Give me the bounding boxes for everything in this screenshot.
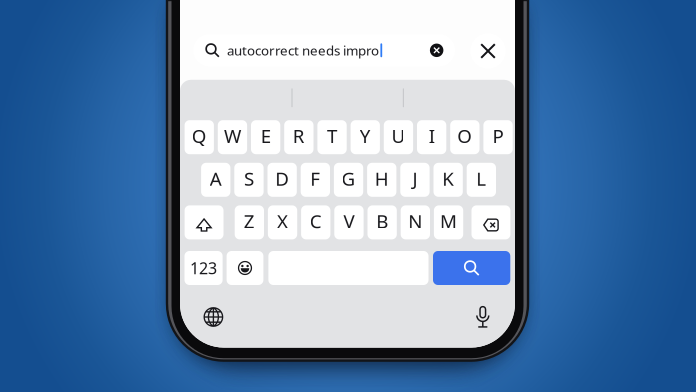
button[interactable]: T <box>317 120 347 154</box>
staticText: P <box>493 123 504 148</box>
staticText: V <box>343 209 354 233</box>
button[interactable]: Y <box>351 120 380 154</box>
button[interactable]: Shift <box>185 205 223 239</box>
button[interactable]: U <box>384 120 413 154</box>
button[interactable]: J <box>400 163 430 197</box>
button[interactable]: W <box>218 120 247 154</box>
button[interactable]: V <box>334 205 364 239</box>
button[interactable]: D <box>267 163 297 197</box>
button[interactable]: X <box>268 205 297 239</box>
staticText: Q <box>192 123 207 148</box>
staticText: A <box>210 166 222 191</box>
button[interactable]: Close <box>470 33 505 68</box>
button[interactable]: P <box>483 120 513 154</box>
button[interactable]: R <box>284 120 313 154</box>
button[interactable]: G <box>334 163 363 197</box>
staticText: F <box>310 166 320 191</box>
staticText: K <box>442 166 454 191</box>
staticText: I <box>429 123 435 148</box>
staticText: J <box>412 166 417 191</box>
staticText: R <box>293 123 305 148</box>
staticText: C <box>310 209 322 233</box>
button[interactable]: N <box>401 205 430 239</box>
button[interactable]: F <box>301 163 330 197</box>
button[interactable]: C <box>301 205 330 239</box>
button[interactable]: O <box>450 120 479 154</box>
button[interactable]: S <box>234 163 264 197</box>
button[interactable]: 123 <box>184 251 223 285</box>
staticText: N <box>408 209 422 233</box>
staticText: T <box>327 123 337 148</box>
staticText: 123 <box>190 257 217 279</box>
button[interactable]: Dictation <box>464 298 502 336</box>
button[interactable]: Emoji <box>227 251 263 285</box>
button[interactable]: autocorrect needs impro <box>193 34 455 66</box>
staticText: autocorrect needs impro <box>227 41 379 59</box>
staticText: S <box>244 166 254 191</box>
button[interactable]: E <box>251 120 280 154</box>
button[interactable]: L <box>467 163 496 197</box>
staticText: O <box>457 123 472 148</box>
button[interactable]: M <box>434 205 463 239</box>
button[interactable]: Q <box>185 120 214 154</box>
button[interactable]: Search <box>433 251 510 285</box>
staticText: B <box>376 209 388 233</box>
button[interactable]: A <box>201 163 230 197</box>
staticText: E <box>261 123 271 148</box>
button[interactable]: Delete <box>471 205 510 239</box>
staticText: X <box>277 209 288 233</box>
staticText: Z <box>244 209 255 233</box>
staticText: W <box>224 123 241 148</box>
button[interactable]: B <box>367 205 397 239</box>
button[interactable]: Next keyboard <box>194 298 232 336</box>
staticText: Y <box>360 123 371 148</box>
staticText: D <box>275 166 289 191</box>
staticText: L <box>476 166 486 191</box>
button[interactable]: H <box>367 163 396 197</box>
button[interactable]: Z <box>235 205 264 239</box>
button[interactable]: K <box>433 163 463 197</box>
button[interactable]: I <box>417 120 446 154</box>
staticText: G <box>341 166 355 191</box>
staticText: M <box>440 209 457 233</box>
staticText: U <box>391 123 405 148</box>
staticText: H <box>375 166 389 191</box>
